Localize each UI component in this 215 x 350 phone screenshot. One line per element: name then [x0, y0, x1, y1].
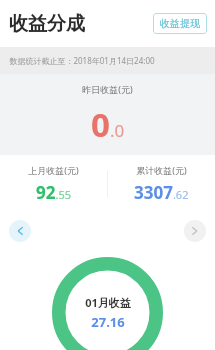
staticText: 昨日收益(元)	[82, 83, 133, 95]
staticText: 3307.62	[134, 181, 189, 204]
staticText: 收益分成	[9, 12, 85, 36]
staticText: 27.16	[91, 313, 125, 331]
button[interactable]: 上月收益(元)	[0, 155, 107, 213]
button[interactable]: Next month	[184, 220, 206, 242]
staticText: 92.55	[36, 181, 71, 204]
staticText: 数据统计截止至：2018年01月14日24:00	[9, 55, 155, 66]
button[interactable]: 收益提现	[153, 13, 207, 34]
button[interactable]: 累计收益(元)	[107, 155, 215, 213]
staticText: 01月收益	[85, 295, 131, 310]
staticText: 累计收益(元)	[136, 164, 187, 176]
staticText: 上月收益(元)	[28, 164, 79, 176]
staticText: 收益提现	[160, 17, 200, 30]
button[interactable]: Previous month	[9, 220, 31, 242]
staticText: 0.0	[91, 102, 125, 147]
